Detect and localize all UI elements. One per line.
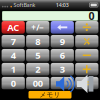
staticText: 14:03 — [56, 1, 69, 9]
button[interactable]: 4 — [2, 49, 25, 62]
button[interactable]: 0 — [2, 77, 25, 89]
button[interactable]: +/− — [26, 21, 49, 34]
button[interactable]: メモリ — [28, 91, 71, 99]
button[interactable]: 00 — [26, 77, 49, 89]
button[interactable] — [75, 63, 98, 76]
button[interactable]: . — [51, 77, 74, 89]
staticText: 9 — [60, 35, 65, 47]
button[interactable]: 6 — [51, 49, 74, 62]
staticText: 7 — [11, 35, 16, 47]
button[interactable] — [51, 21, 74, 34]
staticText: 0 — [11, 77, 16, 89]
staticText: 5 — [35, 49, 40, 61]
button[interactable]: 9 — [51, 35, 74, 48]
staticText: 1 — [11, 63, 16, 75]
staticText: 0 — [88, 9, 94, 23]
button[interactable]: AC — [2, 21, 25, 34]
staticText: メモリ — [39, 91, 60, 99]
staticText: AC — [7, 21, 19, 33]
staticText: 6 — [60, 49, 65, 61]
staticText: SoftBank — [14, 1, 36, 9]
button[interactable]: 5 — [26, 49, 49, 62]
staticText: +/− — [31, 22, 44, 33]
staticText: 2 — [35, 63, 40, 75]
button[interactable] — [75, 49, 98, 62]
staticText: 8 — [35, 35, 40, 47]
button[interactable] — [75, 35, 98, 48]
staticText: 4 — [11, 49, 16, 61]
staticText: . — [61, 77, 64, 89]
button[interactable]: 8 — [26, 35, 49, 48]
button[interactable] — [75, 21, 98, 34]
button[interactable]: 7 — [2, 35, 25, 48]
button[interactable]: 3 — [51, 63, 74, 76]
staticText: 00 — [33, 77, 43, 89]
button[interactable]: 1 — [2, 63, 25, 76]
button[interactable] — [75, 77, 98, 89]
staticText: 3 — [60, 63, 65, 75]
button[interactable]: 2 — [26, 63, 49, 76]
